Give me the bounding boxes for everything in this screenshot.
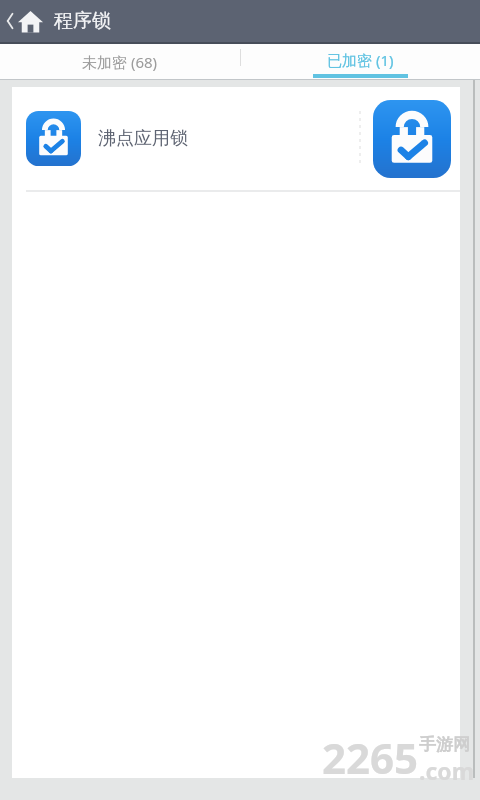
staticText: 未加密 (68) [82,52,158,72]
staticText: 已加密 (1) [327,50,394,70]
button[interactable]: 沸点应用锁 [12,87,460,190]
staticText: .com [419,755,475,786]
button[interactable]: 已加密 (1) [240,44,480,79]
staticText: 手游网 [419,734,470,755]
staticText: 沸点应用锁 [98,127,188,150]
button[interactable]: Home / Back [0,0,45,42]
staticText: 2265 [322,729,419,786]
staticText: 程序锁 [54,9,111,33]
button[interactable]: 未加密 (68) [0,44,240,79]
